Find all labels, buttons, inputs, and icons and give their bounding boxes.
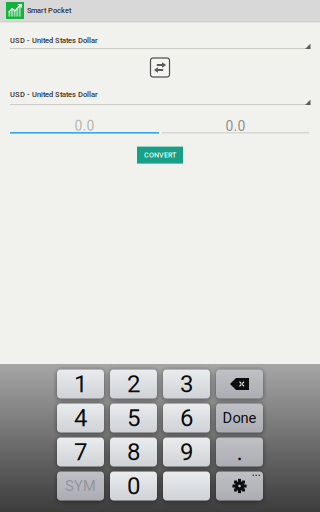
- staticText: 6: [180, 404, 193, 432]
- button[interactable]: 7: [57, 437, 104, 466]
- staticText: 0.0: [74, 118, 94, 134]
- staticText: 9: [180, 438, 193, 466]
- button[interactable]: Converted amount: [162, 120, 309, 133]
- staticText: 2: [127, 370, 140, 398]
- button[interactable]: .: [216, 437, 263, 466]
- staticText: USD - United States Dollar: [10, 36, 98, 45]
- staticText: 0.0: [225, 118, 245, 134]
- button[interactable]: Swap currencies: [150, 58, 169, 77]
- staticText: 7: [74, 438, 87, 466]
- staticText: 1: [74, 370, 87, 398]
- button[interactable]: 6: [163, 403, 210, 432]
- staticText: 0: [127, 472, 140, 500]
- staticText: USD - United States Dollar: [10, 90, 98, 99]
- button[interactable]: 9: [163, 437, 210, 466]
- button[interactable]: 2: [110, 369, 157, 398]
- button[interactable]: 5: [110, 403, 157, 432]
- staticText: 3: [180, 370, 193, 398]
- button[interactable]: Amount to convert: [10, 120, 159, 134]
- button[interactable]: SYM: [57, 471, 104, 500]
- staticText: 5: [127, 404, 140, 432]
- staticText: .: [236, 438, 242, 466]
- button[interactable]: 8: [110, 437, 157, 466]
- button[interactable]: 4: [57, 403, 104, 432]
- staticText: SYM: [65, 477, 96, 495]
- staticText: Done: [222, 409, 256, 427]
- button[interactable]: 1: [57, 369, 104, 398]
- button[interactable]: Delete: [216, 369, 263, 398]
- button[interactable]: CONVERT: [137, 147, 183, 164]
- button[interactable]: 3: [163, 369, 210, 398]
- button[interactable]: Done: [216, 403, 263, 432]
- button[interactable]: Select currency: [0, 35, 320, 49]
- staticText: CONVERT: [144, 151, 176, 159]
- button[interactable]: Space: [163, 471, 210, 500]
- staticText: Smart Pocket: [27, 6, 71, 15]
- button[interactable]: 0: [110, 471, 157, 500]
- button[interactable]: Select currency: [0, 89, 320, 105]
- button[interactable]: Keyboard settings: [216, 471, 263, 500]
- staticText: 4: [74, 404, 87, 432]
- staticText: 8: [127, 438, 140, 466]
